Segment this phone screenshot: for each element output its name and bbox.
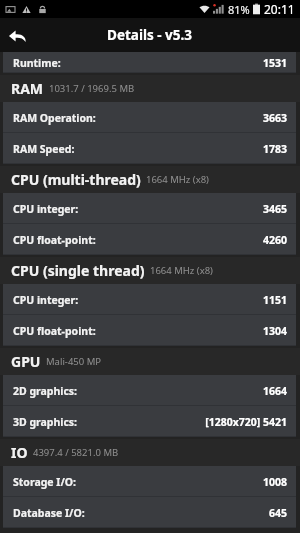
staticText: CPU float-point:	[13, 324, 96, 338]
staticText: 645	[268, 506, 287, 520]
staticText: Mali-450 MP	[46, 355, 102, 368]
staticText: 3D graphics:	[13, 415, 78, 429]
staticText: 1664 MHz (x8)	[150, 264, 213, 277]
button[interactable]: Database I/O:	[3, 497, 296, 528]
staticText: 20:11	[264, 1, 295, 17]
staticText: [1280x720] 5421	[205, 415, 287, 429]
button[interactable]: RAM Speed:	[3, 133, 296, 164]
staticText: 1008	[262, 475, 287, 489]
staticText: 1151	[262, 293, 287, 307]
staticText: IO	[11, 443, 28, 462]
staticText: GPU	[11, 352, 41, 371]
staticText: RAM Speed:	[13, 142, 75, 156]
staticText: 2D graphics:	[13, 384, 78, 398]
staticText: CPU float-point:	[13, 233, 96, 247]
button[interactable]: RAM Operation:	[3, 102, 296, 133]
button[interactable]: Back	[0, 18, 34, 52]
staticText: CPU integer:	[13, 293, 79, 307]
staticText: 4397.4 / 5821.0 MB	[33, 446, 119, 459]
staticText: 4260	[262, 233, 287, 247]
button[interactable]: CPU integer:	[3, 284, 296, 315]
staticText: 1783	[262, 142, 287, 156]
staticText: Runtime:	[13, 56, 61, 70]
button[interactable]: Storage I/O:	[3, 466, 296, 497]
button[interactable]: Runtime:	[3, 52, 296, 73]
staticText: 3465	[262, 202, 287, 216]
staticText: CPU (multi-thread)	[11, 170, 141, 189]
staticText: RAM Operation:	[13, 111, 96, 125]
staticText: 1031.7 / 1969.5 MB	[49, 82, 135, 95]
staticText: Details - v5.3	[107, 26, 193, 44]
button[interactable]: 3D graphics:	[3, 406, 296, 437]
staticText: 3663	[262, 111, 287, 125]
button[interactable]: CPU float-point:	[3, 224, 296, 255]
staticText: Storage I/O:	[13, 475, 77, 489]
staticText: 1304	[262, 324, 287, 338]
staticText: Database I/O:	[13, 506, 85, 520]
button[interactable]: CPU integer:	[3, 193, 296, 224]
button[interactable]: 2D graphics:	[3, 375, 296, 406]
staticText: 1664 MHz (x8)	[146, 173, 209, 186]
staticText: CPU (single thread)	[11, 261, 145, 280]
staticText: 1531	[262, 56, 287, 70]
staticText: 81%	[228, 2, 250, 17]
staticText: RAM	[11, 79, 44, 98]
staticText: 1664	[262, 384, 287, 398]
button[interactable]: CPU float-point:	[3, 315, 296, 346]
staticText: CPU integer:	[13, 202, 79, 216]
